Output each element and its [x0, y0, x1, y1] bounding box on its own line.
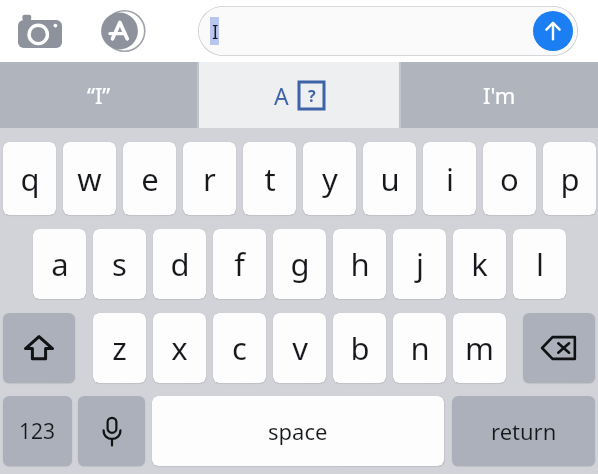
button[interactable]: o — [483, 142, 536, 215]
staticText: b — [350, 327, 370, 369]
button[interactable]: d — [153, 229, 206, 299]
button[interactable]: c — [213, 313, 266, 383]
staticText: p — [560, 158, 580, 200]
staticText: y — [322, 158, 338, 200]
staticText: A — [274, 80, 289, 111]
staticText: o — [500, 158, 519, 200]
button[interactable]: Backspace — [523, 313, 595, 383]
staticText: return — [491, 416, 557, 446]
staticText: j — [416, 243, 424, 285]
button[interactable]: A — [199, 62, 399, 128]
button[interactable]: Camera — [18, 11, 62, 51]
staticText: s — [112, 243, 127, 285]
button[interactable]: b — [333, 313, 386, 383]
staticText: n — [410, 327, 430, 369]
staticText: k — [471, 243, 488, 285]
button[interactable]: x — [153, 313, 206, 383]
button[interactable]: h — [333, 229, 386, 299]
staticText: q — [20, 158, 40, 200]
button[interactable]: z — [93, 313, 146, 383]
button[interactable]: a — [33, 229, 86, 299]
staticText: 123 — [19, 417, 56, 446]
staticText: g — [290, 243, 310, 285]
staticText: w — [77, 158, 102, 200]
button[interactable]: t — [243, 142, 296, 215]
button[interactable]: Send — [533, 11, 573, 51]
staticText: a — [51, 243, 69, 285]
staticText: x — [171, 327, 188, 369]
button[interactable]: y — [303, 142, 356, 215]
button[interactable]: w — [63, 142, 116, 215]
staticText: space — [268, 416, 328, 446]
button[interactable]: q — [3, 142, 56, 215]
staticText: l — [536, 243, 544, 285]
staticText: h — [350, 243, 370, 285]
staticText: c — [232, 327, 247, 369]
button[interactable]: v — [273, 313, 326, 383]
staticText: v — [292, 327, 308, 369]
button[interactable]: I — [198, 6, 578, 56]
staticText: m — [465, 327, 494, 369]
button[interactable]: return — [452, 396, 595, 466]
button[interactable]: u — [363, 142, 416, 215]
button[interactable]: e — [123, 142, 176, 215]
button[interactable]: i — [423, 142, 476, 215]
button[interactable]: m — [453, 313, 506, 383]
button[interactable]: l — [513, 229, 566, 299]
staticText: u — [380, 158, 400, 200]
staticText: r — [203, 158, 216, 200]
staticText: ? — [308, 85, 316, 107]
button[interactable]: App Store — [98, 8, 144, 54]
button[interactable]: I'm — [401, 62, 598, 128]
button[interactable]: Dictate — [78, 396, 145, 466]
button[interactable]: k — [453, 229, 506, 299]
button[interactable]: Shift — [3, 313, 75, 383]
button[interactable]: “I” — [0, 62, 197, 128]
button[interactable]: j — [393, 229, 446, 299]
staticText: e — [141, 158, 159, 200]
button[interactable]: 123 — [3, 396, 72, 466]
button[interactable]: s — [93, 229, 146, 299]
button[interactable]: g — [273, 229, 326, 299]
staticText: i — [446, 158, 454, 200]
staticText: f — [234, 243, 245, 285]
staticText: t — [264, 158, 276, 200]
button[interactable]: f — [213, 229, 266, 299]
button[interactable]: space — [152, 396, 444, 466]
staticText: d — [170, 243, 190, 285]
staticText: I — [212, 19, 219, 45]
button[interactable]: n — [393, 313, 446, 383]
staticText: I'm — [483, 80, 516, 110]
button[interactable]: p — [543, 142, 596, 215]
button[interactable]: r — [183, 142, 236, 215]
staticText: z — [112, 327, 127, 369]
staticText: “I” — [87, 80, 111, 110]
